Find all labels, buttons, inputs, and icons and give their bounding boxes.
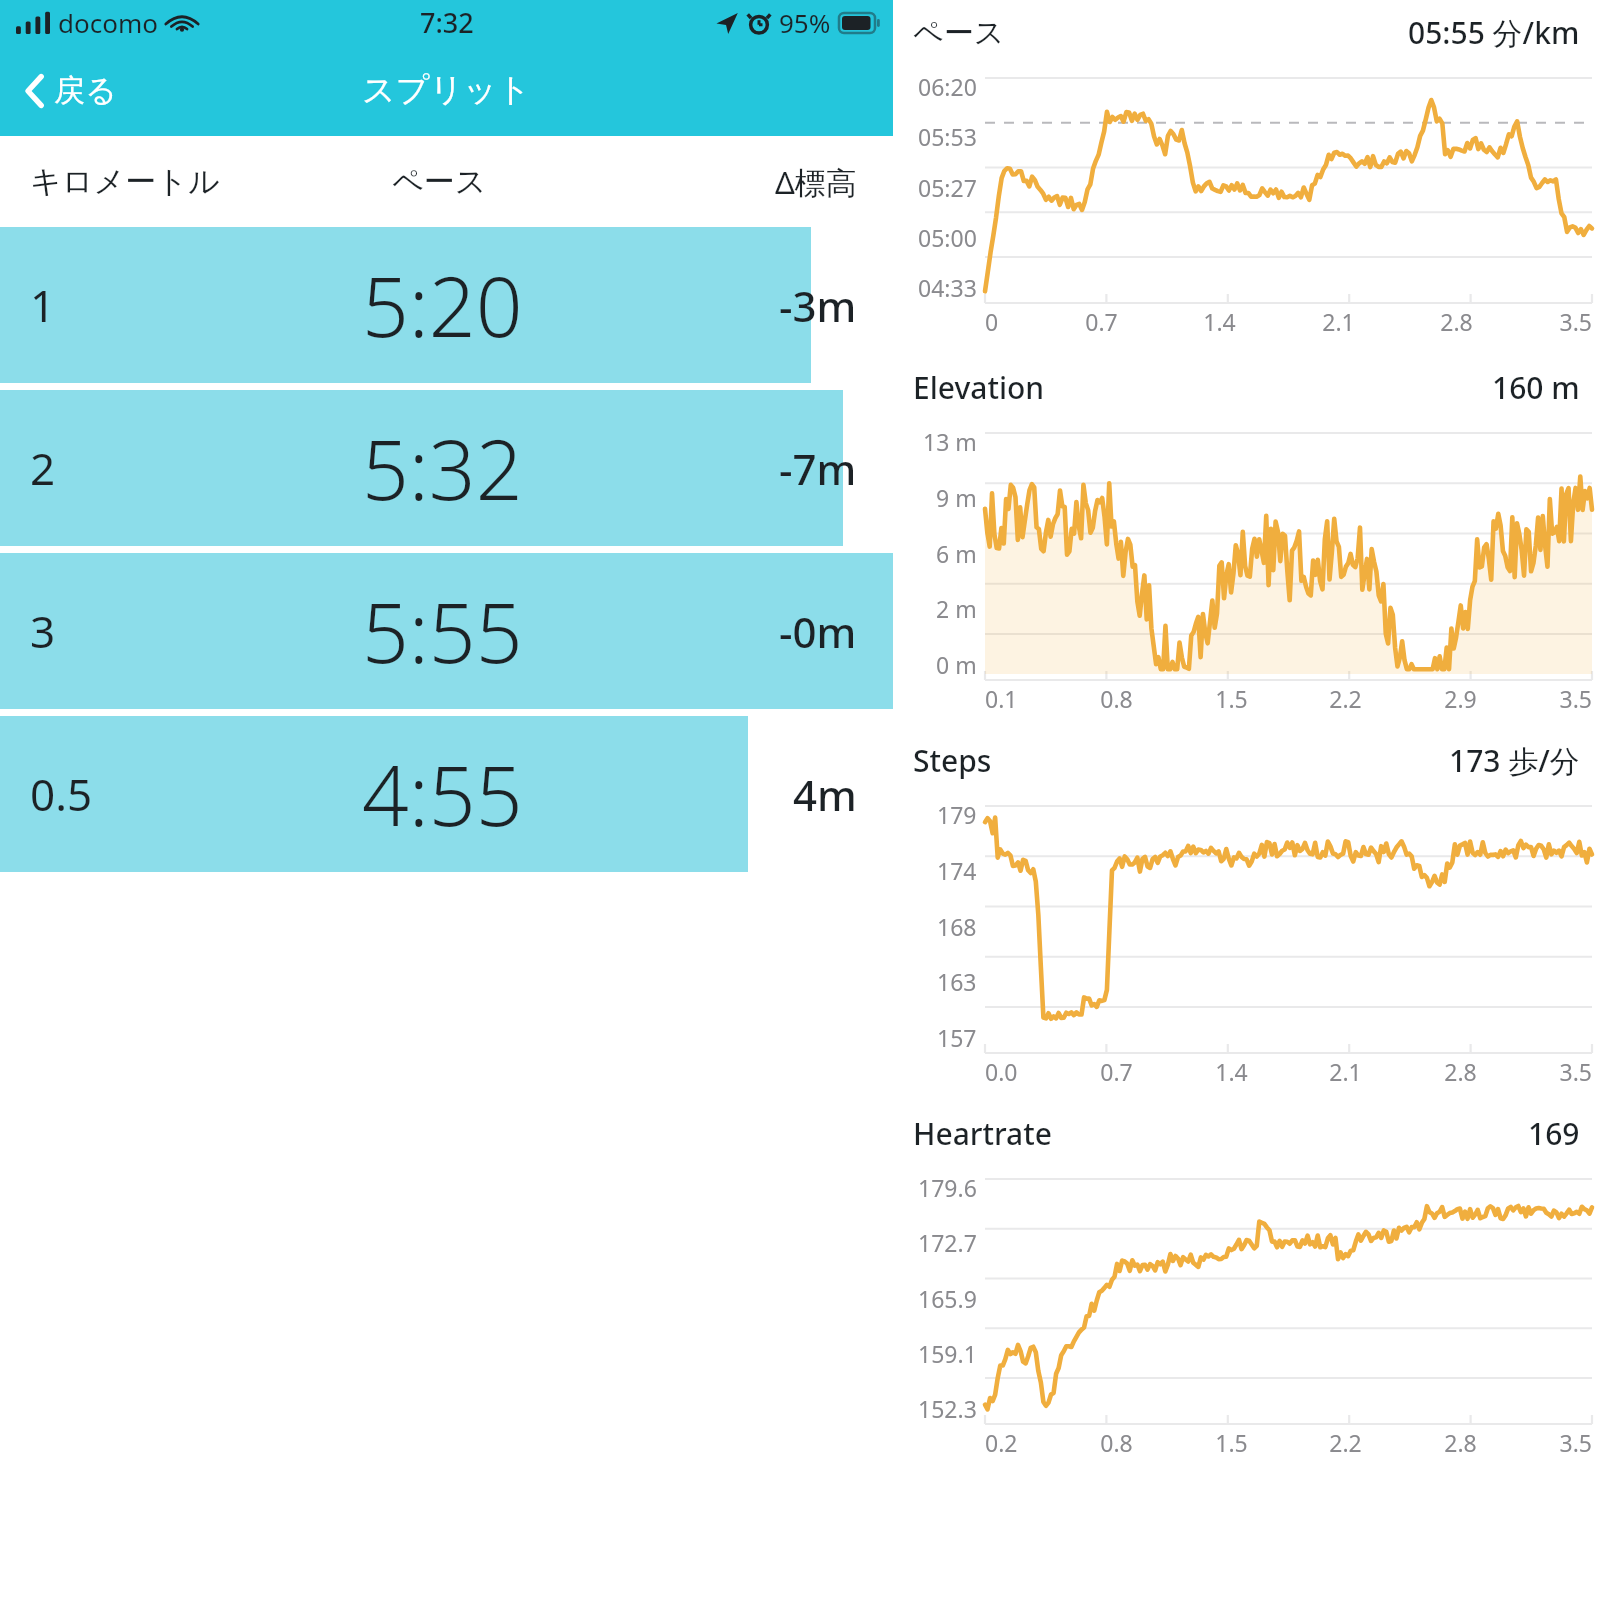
- staticText: 3.5: [1559, 306, 1592, 337]
- staticText: 2.2: [1329, 1427, 1362, 1458]
- staticText: 0.7: [1100, 1056, 1133, 1087]
- staticText: 165.9: [918, 1283, 977, 1314]
- staticText: 2.9: [1444, 683, 1477, 714]
- staticText: -7m: [779, 440, 857, 497]
- staticText: 173 歩/分: [1449, 740, 1580, 781]
- staticText: 5:32: [362, 412, 523, 524]
- staticText: 163: [937, 966, 977, 997]
- staticText: 2 m: [936, 593, 977, 624]
- staticText: 1: [30, 275, 56, 335]
- staticText: 2.1: [1322, 306, 1355, 337]
- staticText: 4:55: [362, 738, 523, 850]
- staticText: 174: [937, 855, 977, 886]
- staticText: 0.8: [1100, 1427, 1133, 1458]
- staticText: スプリット: [362, 69, 531, 111]
- staticText: キロメートル: [30, 162, 220, 201]
- staticText: 13 m: [923, 426, 977, 457]
- staticText: ペース: [392, 162, 487, 201]
- staticText: 04:33: [918, 272, 977, 303]
- staticText: 5:55: [362, 575, 523, 687]
- staticText: 0: [985, 306, 999, 337]
- staticText: 179.6: [918, 1172, 977, 1203]
- staticText: -0m: [779, 603, 857, 660]
- staticText: 7:32: [420, 4, 474, 41]
- staticText: 2.8: [1440, 306, 1473, 337]
- staticText: 95%: [779, 5, 831, 40]
- staticText: 3: [30, 601, 56, 661]
- button[interactable]: ペース: [893, 0, 1600, 337]
- staticText: 2.1: [1329, 1056, 1362, 1087]
- staticText: 3.5: [1559, 1427, 1592, 1458]
- staticText: 5:20: [362, 249, 523, 361]
- staticText: 1.5: [1215, 1427, 1248, 1458]
- button[interactable]: Heartrate: [893, 1087, 1600, 1458]
- button[interactable]: 3: [0, 553, 893, 709]
- staticText: 05:53: [918, 121, 977, 152]
- staticText: 05:27: [918, 172, 977, 203]
- staticText: 168: [937, 911, 977, 942]
- staticText: -3m: [779, 277, 857, 334]
- staticText: 9 m: [936, 482, 977, 513]
- button[interactable]: 0.5: [0, 716, 893, 872]
- button[interactable]: Elevation: [893, 337, 1600, 714]
- staticText: 0.1: [985, 683, 1018, 714]
- staticText: ペース: [913, 14, 1005, 52]
- staticText: 0.7: [1085, 306, 1118, 337]
- staticText: 0.2: [985, 1427, 1018, 1458]
- button[interactable]: 1: [0, 227, 893, 383]
- staticText: 152.3: [918, 1393, 977, 1424]
- staticText: 159.1: [918, 1338, 977, 1369]
- staticText: 0.0: [985, 1056, 1018, 1087]
- staticText: 06:20: [918, 71, 977, 102]
- staticText: Steps: [913, 740, 992, 781]
- button[interactable]: 2: [0, 390, 893, 546]
- staticText: 160 m: [1492, 367, 1580, 408]
- staticText: 2.8: [1444, 1427, 1477, 1458]
- staticText: 1.5: [1215, 683, 1248, 714]
- staticText: 2.8: [1444, 1056, 1477, 1087]
- staticText: 2: [30, 438, 56, 498]
- staticText: 1.4: [1215, 1056, 1248, 1087]
- staticText: 1.4: [1203, 306, 1236, 337]
- staticText: 6 m: [936, 538, 977, 569]
- staticText: 0 m: [936, 649, 977, 680]
- staticText: 3.5: [1559, 683, 1592, 714]
- staticText: 179: [937, 799, 977, 830]
- button[interactable]: Steps: [893, 714, 1600, 1087]
- staticText: 169: [1528, 1113, 1580, 1154]
- staticText: 4m: [793, 766, 857, 823]
- staticText: 0.8: [1100, 683, 1133, 714]
- staticText: 戻る: [54, 71, 117, 110]
- staticText: 05:55 分/km: [1408, 12, 1580, 53]
- staticText: docomo: [58, 5, 158, 40]
- staticText: Δ標高: [775, 161, 857, 203]
- staticText: 172.7: [918, 1227, 977, 1258]
- staticText: Elevation: [913, 367, 1045, 408]
- staticText: 0.5: [30, 764, 93, 824]
- staticText: 2.2: [1329, 683, 1362, 714]
- staticText: 157: [937, 1022, 977, 1053]
- staticText: Heartrate: [913, 1113, 1052, 1154]
- button[interactable]: 戻る: [16, 65, 125, 116]
- staticText: 05:00: [918, 222, 977, 253]
- staticText: 3.5: [1559, 1056, 1592, 1087]
